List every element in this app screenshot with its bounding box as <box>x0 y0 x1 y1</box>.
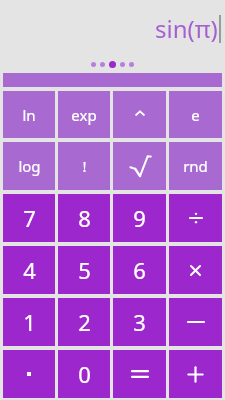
button[interactable]: Equals <box>113 350 166 398</box>
button[interactable]: Power <box>113 91 166 138</box>
button[interactable]: 8 <box>58 194 110 242</box>
button[interactable]: 9 <box>113 194 166 242</box>
button[interactable]: Multiply <box>169 246 222 294</box>
staticText: 5 <box>78 255 91 285</box>
button[interactable]: exp <box>58 91 110 138</box>
staticText: 6 <box>133 255 146 285</box>
staticText: 3 <box>133 307 146 337</box>
button[interactable]: 4 <box>3 246 55 294</box>
staticText: 9 <box>133 203 146 233</box>
button[interactable]: Minus <box>169 298 222 346</box>
staticText: log <box>18 156 41 176</box>
button[interactable]: 3 <box>113 298 166 346</box>
button[interactable]: log <box>3 142 55 190</box>
button[interactable]: Plus <box>169 350 222 398</box>
button[interactable]: Decimal point <box>3 350 55 398</box>
staticText: 1 <box>23 307 36 337</box>
button[interactable]: 6 <box>113 246 166 294</box>
staticText: sin(π) <box>155 12 218 45</box>
staticText: 0 <box>78 359 91 389</box>
button[interactable]: 0 <box>58 350 110 398</box>
staticText: ln <box>22 105 36 125</box>
staticText: rnd <box>183 156 208 176</box>
staticText: e <box>191 105 200 125</box>
staticText: 7 <box>23 203 36 233</box>
button[interactable]: Square root <box>113 142 166 190</box>
staticText: 8 <box>78 203 91 233</box>
button[interactable]: 2 <box>58 298 110 346</box>
button[interactable]: sin(π) <box>0 0 225 56</box>
staticText: ! <box>82 156 87 176</box>
button[interactable]: e <box>169 91 222 138</box>
button[interactable]: Divide <box>169 194 222 242</box>
staticText: exp <box>71 105 97 125</box>
staticText: 4 <box>23 255 36 285</box>
button[interactable]: rnd <box>169 142 222 190</box>
staticText: 2 <box>78 307 91 337</box>
button[interactable]: 5 <box>58 246 110 294</box>
button[interactable]: 7 <box>3 194 55 242</box>
button[interactable]: ln <box>3 91 55 138</box>
button[interactable]: ! <box>58 142 110 190</box>
button[interactable]: 1 <box>3 298 55 346</box>
